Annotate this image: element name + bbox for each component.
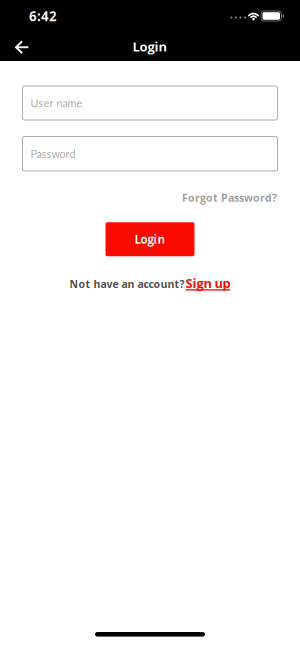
staticText: 6:42 [29,7,57,25]
button[interactable]: Forgot Password? [182,190,277,205]
staticText: Login [134,231,165,247]
staticText: Not have an account? [69,277,184,291]
staticText: Password [30,147,75,160]
button[interactable]: User name [22,85,278,120]
staticText: Login [132,38,167,55]
staticText: User name [30,96,82,109]
button[interactable]: Login [105,222,194,256]
staticText: Forgot Password? [182,190,277,205]
button[interactable]: Password [22,136,278,171]
staticText: Sign up [185,274,230,292]
button[interactable]: Back [0,39,29,54]
button[interactable]: Sign up [185,274,230,292]
